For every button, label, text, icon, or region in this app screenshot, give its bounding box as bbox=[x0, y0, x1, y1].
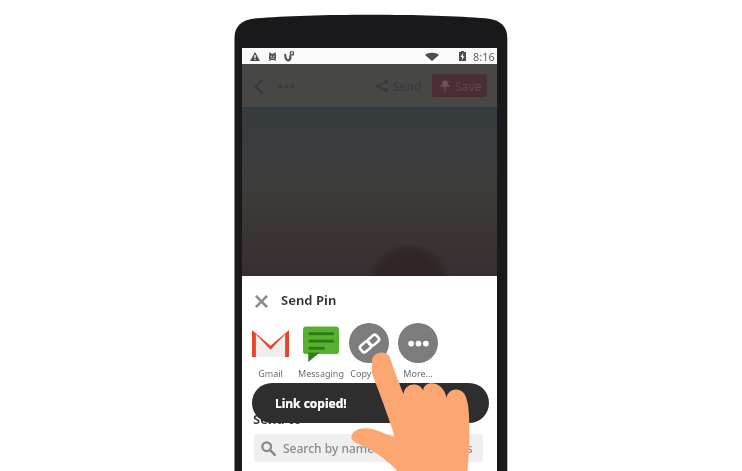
button[interactable]: Close bbox=[249, 289, 273, 313]
staticText: Send Pin bbox=[281, 291, 337, 309]
button[interactable]: Back bbox=[245, 73, 271, 99]
staticText: Link copied! bbox=[275, 395, 347, 411]
button[interactable]: More bbox=[393, 323, 443, 379]
staticText: Messaging bbox=[298, 367, 344, 379]
staticText: More... bbox=[403, 367, 433, 379]
staticText: Save bbox=[455, 78, 482, 94]
staticText: 8:16 bbox=[473, 49, 495, 64]
staticText: Send to bbox=[253, 410, 302, 428]
button[interactable]: Send bbox=[370, 73, 428, 99]
other: Copy link bbox=[349, 323, 389, 363]
button[interactable]: Search by name or email address bbox=[254, 434, 483, 462]
staticText: Copy link bbox=[350, 367, 389, 379]
staticText: Gmail bbox=[258, 367, 283, 379]
staticText: Search by name or email address bbox=[283, 440, 473, 456]
button[interactable]: Copy link bbox=[344, 323, 394, 379]
button[interactable]: Gmail bbox=[245, 323, 295, 379]
button[interactable]: Messaging bbox=[296, 323, 346, 379]
button[interactable]: Save bbox=[432, 74, 487, 97]
staticText: Send bbox=[393, 78, 422, 94]
other: More bbox=[398, 323, 438, 363]
